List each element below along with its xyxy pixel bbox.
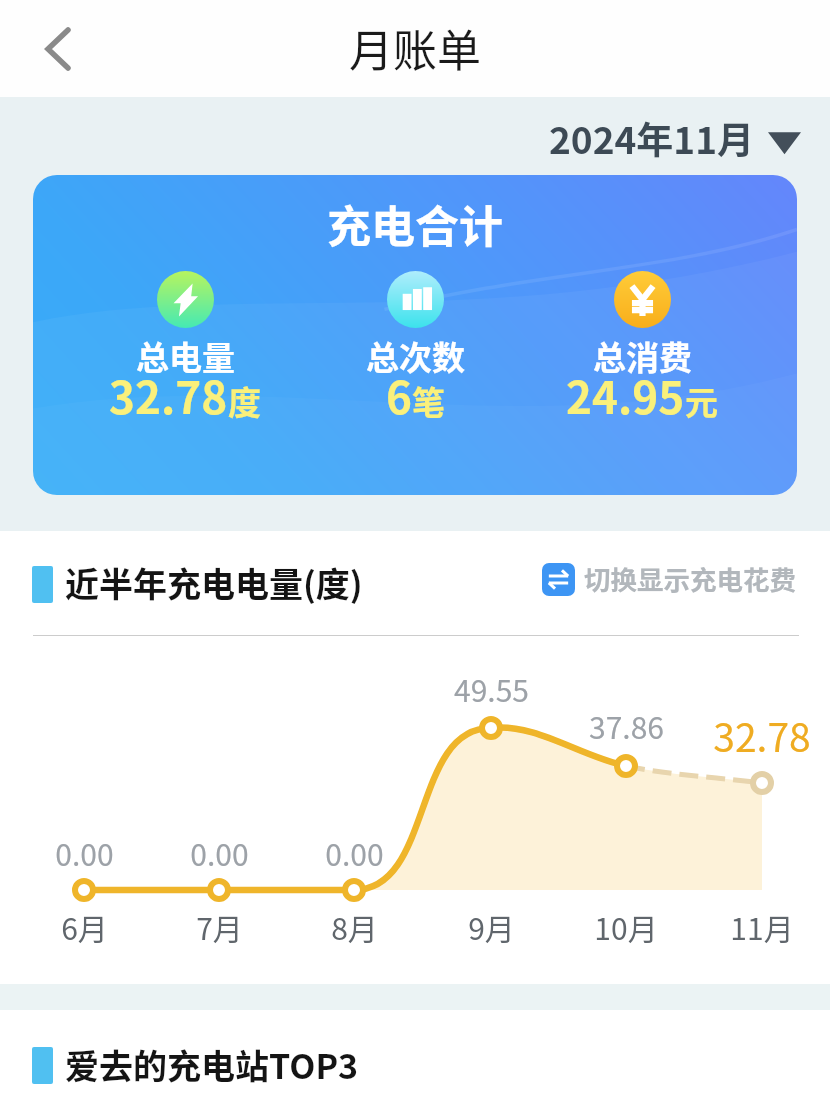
staticText: 7月 — [196, 905, 243, 948]
button[interactable]: 2024年11月 — [543, 105, 807, 171]
staticText: 总次数 — [366, 332, 465, 380]
button[interactable]: 充电合计 — [33, 175, 797, 495]
staticText: 0.00 — [190, 831, 249, 874]
staticText: 11月 — [730, 905, 794, 948]
staticText: 总电量 — [136, 332, 235, 380]
staticText: 总消费 — [593, 332, 692, 380]
button[interactable]: 切换显示充电花费 — [537, 555, 801, 603]
staticText: 32.78 — [713, 707, 811, 763]
staticText: 元 — [685, 377, 718, 425]
staticText: 6月 — [61, 905, 108, 948]
staticText: 32.78 — [109, 363, 228, 427]
staticText: 0.00 — [55, 831, 114, 874]
staticText: 9月 — [468, 905, 515, 948]
staticText: 切换显示充电花费 — [584, 559, 796, 597]
staticText: 充电合计 — [327, 192, 503, 256]
staticText: 10月 — [594, 905, 658, 948]
staticText: 近半年充电电量(度) — [65, 558, 363, 607]
staticText: 37.86 — [589, 704, 664, 747]
staticText: 6 — [386, 363, 412, 427]
staticText: 24.95 — [566, 363, 685, 427]
staticText: 月账单 — [349, 16, 481, 80]
staticText: 度 — [228, 377, 261, 425]
staticText: 爱去的充电站TOP3 — [65, 1040, 359, 1089]
staticText: 笔 — [412, 377, 445, 425]
staticText: 2024年11月 — [549, 111, 754, 165]
staticText: 0.00 — [325, 831, 384, 874]
staticText: 49.55 — [454, 667, 529, 710]
button[interactable]: Back — [22, 13, 94, 85]
staticText: 8月 — [331, 905, 378, 948]
